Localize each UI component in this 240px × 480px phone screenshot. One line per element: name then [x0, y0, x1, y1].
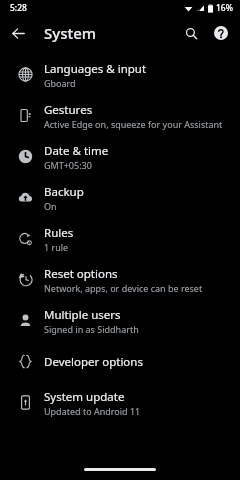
button[interactable]: Multiple users — [0, 300, 240, 341]
staticText: Rules — [44, 225, 74, 241]
staticText: System — [44, 23, 97, 43]
button[interactable]: Rules — [0, 218, 240, 259]
staticText: Active Edge on, squeeze for your Assista… — [44, 118, 223, 130]
staticText: 1 rule — [44, 241, 69, 253]
button[interactable]: Search — [178, 20, 204, 46]
staticText: 5:28 — [10, 2, 27, 14]
staticText: Updated to Android 11 — [44, 405, 141, 417]
button[interactable]: Developer options — [0, 341, 240, 382]
staticText: Multiple users — [44, 307, 121, 323]
button[interactable]: Languages & input — [0, 54, 240, 95]
staticText: Reset options — [44, 266, 118, 282]
button[interactable]: Date & time — [0, 136, 240, 177]
staticText: On — [44, 200, 57, 212]
button[interactable]: Reset options — [0, 259, 240, 300]
staticText: 16% — [216, 2, 233, 14]
staticText: Signed in as Siddharth — [44, 323, 139, 335]
button[interactable]: Backup — [0, 177, 240, 218]
button[interactable]: Help — [208, 20, 234, 46]
staticText: Developer options — [44, 354, 143, 370]
button[interactable]: Back — [6, 21, 30, 45]
staticText: GMT+05:30 — [44, 159, 92, 171]
staticText: Backup — [44, 184, 84, 200]
button[interactable]: Gestures — [0, 95, 240, 136]
staticText: System update — [44, 389, 125, 405]
staticText: Languages & input — [44, 61, 147, 77]
staticText: Gboard — [44, 77, 76, 89]
staticText: Gestures — [44, 102, 93, 118]
staticText: Date & time — [44, 143, 109, 159]
button[interactable]: System update — [0, 382, 240, 423]
staticText: Network, apps, or device can be reset — [44, 282, 203, 294]
